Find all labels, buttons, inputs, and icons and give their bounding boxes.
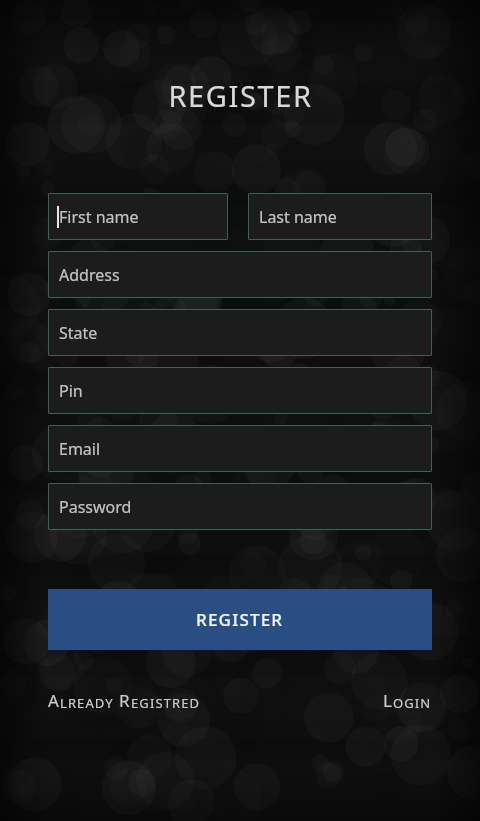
staticText: A [48,689,60,712]
staticText: State [59,322,98,344]
staticText: REGISTER [168,76,313,115]
staticText: Email [59,438,101,460]
button[interactable]: Last name [248,193,432,240]
staticText: L [383,689,393,712]
staticText: First name [59,206,139,228]
button[interactable]: Email [48,425,432,472]
staticText: EGISTRED [131,694,201,712]
staticText: REGISTER [196,608,284,631]
staticText: R [119,689,131,712]
staticText: Address [59,264,120,286]
button[interactable]: First name [48,193,228,240]
staticText: OGIN [393,694,432,712]
button[interactable]: Password [48,483,432,530]
staticText: Password [59,496,132,518]
button[interactable]: REGISTER [48,589,432,650]
staticText: LREADY [60,694,114,712]
staticText: Last name [259,206,337,228]
button[interactable]: L [383,689,432,712]
staticText: Pin [59,380,83,402]
button[interactable]: Address [48,251,432,298]
button[interactable]: Pin [48,367,432,414]
button[interactable]: State [48,309,432,356]
button[interactable]: A [48,689,201,712]
